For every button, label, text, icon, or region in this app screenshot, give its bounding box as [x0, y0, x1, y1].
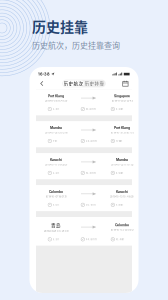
staticText: 2019-10-07 18:07:31 — [45, 195, 66, 198]
staticText: 30.1nm — [85, 203, 95, 206]
staticText: Colombo — [115, 223, 129, 227]
staticText: 青岛 — [51, 222, 61, 228]
staticText: 9.8kn — [115, 203, 123, 206]
staticText: 15.3nm — [85, 171, 95, 174]
staticText: 历史挂靠 — [84, 80, 104, 87]
staticText: 44.8nm — [85, 238, 96, 241]
staticText: 2019-11-08 15:45:07 — [45, 99, 67, 102]
staticText: 2019-10-25 13:02:18 — [45, 131, 67, 134]
staticText: 5.4h — [52, 107, 59, 111]
button[interactable]: Colombo — [36, 185, 132, 211]
staticText: Port Klang — [48, 94, 64, 98]
staticText: 历史航次 — [63, 80, 83, 87]
staticText: 2019-10-31 21:50:05 — [110, 131, 133, 134]
staticText: 8.5kn — [115, 171, 123, 174]
staticText: Singapore — [114, 94, 130, 98]
button[interactable]: 历史挂靠 — [84, 80, 105, 87]
staticText: 2019-10-17 09:33:27 — [45, 163, 67, 166]
staticText: Karachi — [116, 190, 128, 194]
staticText: 24.6nm — [85, 139, 96, 143]
staticText: 7.1h — [52, 139, 57, 143]
staticText: 9.3h — [52, 238, 59, 241]
staticText: 9.2kn — [115, 107, 123, 111]
staticText: 2019-09-21 04:21:09 — [44, 230, 68, 232]
staticText: 11.1kn — [115, 139, 122, 143]
button[interactable]: Port Klang — [36, 89, 132, 115]
button[interactable]: 历史航次 — [63, 80, 84, 87]
staticText: Mundra — [116, 158, 128, 162]
staticText: 2019-10-02 12:06:57 — [110, 228, 133, 231]
staticText: 2019-10-22 17:10:52 — [111, 163, 133, 166]
staticText: Karachi — [50, 158, 62, 162]
staticText: 10.6nm — [85, 107, 95, 111]
staticText: 历史挂靠 — [32, 16, 88, 36]
button[interactable]: 青岛 — [36, 217, 132, 246]
button[interactable]: Karachi — [36, 153, 132, 179]
button[interactable]: Mundra — [36, 121, 132, 147]
staticText: 历史航次，历史挂靠查询 — [32, 39, 120, 51]
staticText: Mundra — [50, 126, 62, 130]
staticText: 2019-11-13 07:12:43 — [111, 99, 132, 102]
staticText: 8.0h — [52, 203, 59, 206]
staticText: 6.2h — [52, 171, 59, 174]
staticText: Colombo — [49, 190, 63, 194]
button[interactable]: Back — [37, 79, 46, 88]
staticText: 10.4kn — [115, 238, 124, 241]
staticText: 16:38 — [38, 72, 50, 76]
button[interactable]: Calendar — [120, 78, 130, 89]
staticText: 2019-10-13 10:48:20 — [110, 195, 134, 198]
staticText: Port Klang — [114, 126, 130, 130]
